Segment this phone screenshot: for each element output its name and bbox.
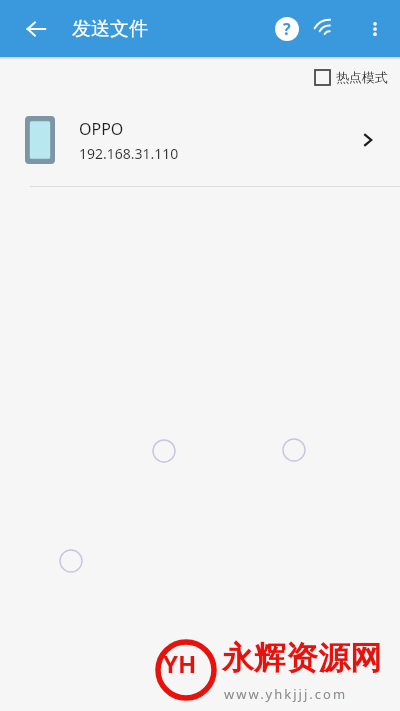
button[interactable]: Scan bbox=[317, 9, 357, 49]
staticText: 192.168.31.110 bbox=[79, 144, 179, 163]
button[interactable]: Back bbox=[14, 7, 58, 51]
button[interactable]: More options bbox=[355, 9, 395, 49]
staticText: 热点模式 bbox=[336, 69, 388, 85]
button[interactable]: OPPO bbox=[0, 94, 400, 186]
button[interactable]: 热点模式 bbox=[311, 66, 392, 88]
staticText: 发送文件 bbox=[72, 17, 148, 41]
staticText: www.yhkjjj.com bbox=[224, 685, 348, 703]
staticText: 永辉资源网 bbox=[222, 638, 382, 678]
staticText: OPPO bbox=[79, 118, 124, 140]
staticText: ? bbox=[283, 18, 291, 40]
staticText: YH bbox=[163, 647, 197, 680]
button[interactable]: Open device bbox=[346, 118, 390, 162]
button[interactable]: Help bbox=[267, 9, 307, 49]
